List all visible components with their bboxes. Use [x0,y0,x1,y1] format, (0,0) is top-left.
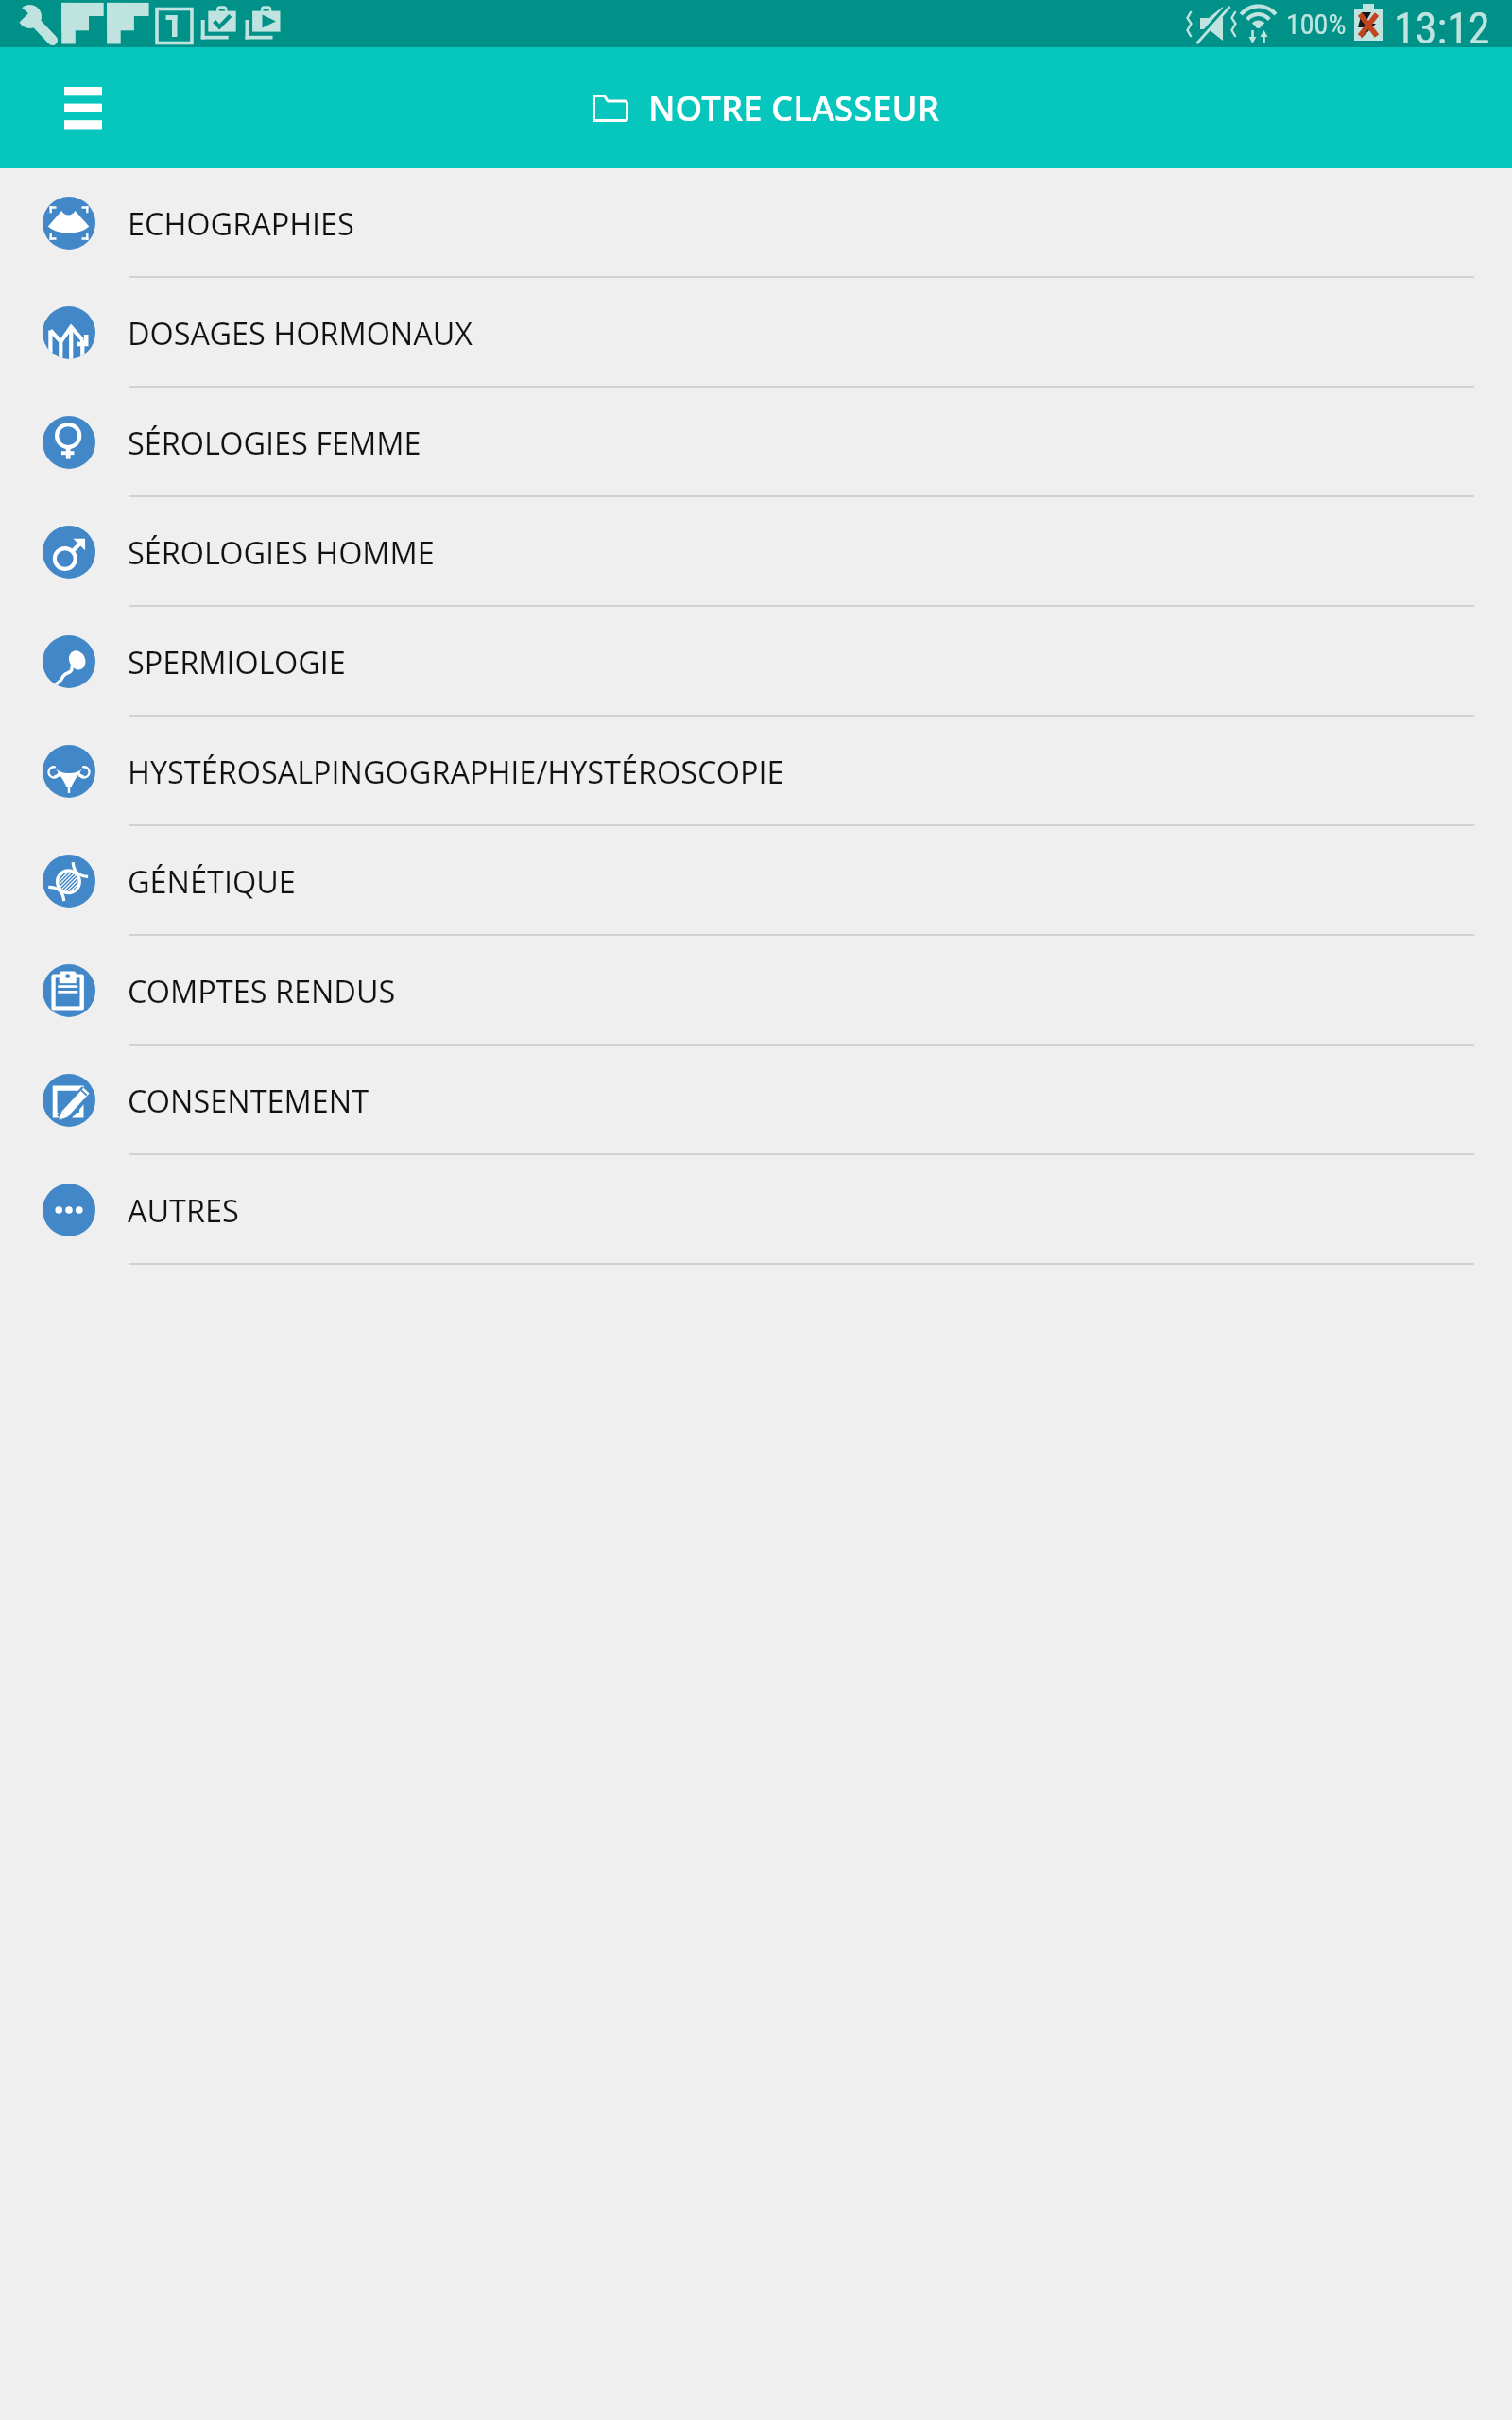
button[interactable]: DOSAGES HORMONAUX [0,278,1512,388]
staticText: SÉROLOGIES HOMME [128,531,435,573]
button[interactable]: COMPTES RENDUS [0,936,1512,1046]
button[interactable]: HYSTÉROSALPINGOGRAPHIE/HYSTÉROSCOPIE [0,717,1512,826]
staticText: AUTRES [128,1189,239,1231]
staticText: SÉROLOGIES FEMME [128,422,421,463]
button[interactable]: SÉROLOGIES FEMME [0,388,1512,497]
staticText: ECHOGRAPHIES [128,202,354,244]
button[interactable]: ECHOGRAPHIES [0,168,1512,278]
staticText: SPERMIOLOGIE [128,641,346,683]
button[interactable]: Open navigation menu [49,74,117,142]
staticText: HYSTÉROSALPINGOGRAPHIE/HYSTÉROSCOPIE [128,751,784,792]
staticText: COMPTES RENDUS [128,970,396,1011]
button[interactable]: AUTRES [0,1155,1512,1265]
staticText: GÉNÉTIQUE [128,860,296,902]
staticText: NOTRE CLASSEUR [648,84,940,131]
button[interactable]: CONSENTEMENT [0,1046,1512,1155]
button[interactable]: SPERMIOLOGIE [0,607,1512,717]
button[interactable]: GÉNÉTIQUE [0,826,1512,936]
staticText: CONSENTEMENT [128,1080,369,1121]
staticText: 100% [1286,8,1347,41]
staticText: 13:12 [1394,3,1490,50]
staticText: DOSAGES HORMONAUX [128,312,473,354]
button[interactable]: SÉROLOGIES HOMME [0,497,1512,607]
